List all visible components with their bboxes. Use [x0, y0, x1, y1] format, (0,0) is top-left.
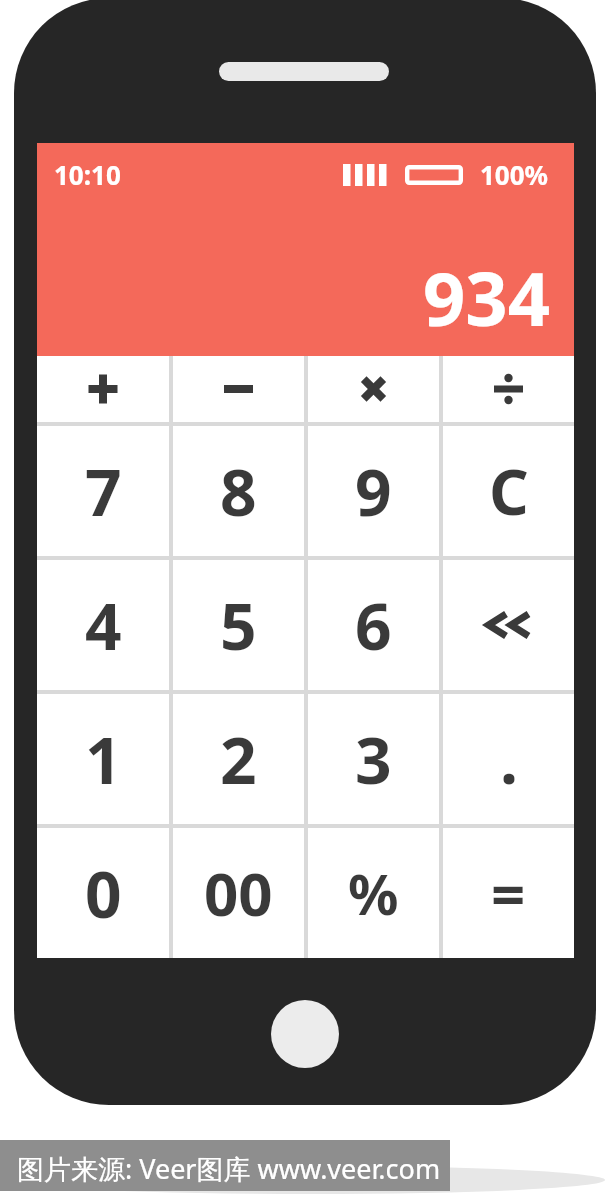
staticText: 7 — [85, 448, 122, 535]
button[interactable]: 8 — [173, 426, 304, 556]
staticText: % — [348, 855, 399, 931]
button[interactable] — [271, 1000, 339, 1068]
button[interactable]: 2 — [173, 694, 304, 824]
button[interactable]: 7 — [37, 426, 169, 556]
staticText: 00 — [204, 852, 273, 934]
button[interactable]: 5 — [173, 560, 304, 690]
button[interactable] — [308, 356, 439, 422]
staticText: 6 — [355, 582, 392, 669]
button[interactable] — [37, 356, 169, 422]
staticText: . — [500, 716, 518, 803]
button[interactable]: 4 — [37, 560, 169, 690]
staticText: 9 — [355, 448, 392, 535]
staticText: 4 — [85, 582, 122, 669]
staticText: 934 — [423, 247, 550, 348]
staticText: 10:10 — [54, 157, 121, 192]
button[interactable]: 6 — [308, 560, 439, 690]
button[interactable]: 00 — [173, 828, 304, 958]
button[interactable] — [173, 356, 304, 422]
staticText: 图片来源: Veer图库 www.veer.com — [17, 1150, 441, 1187]
staticText: 0 — [85, 850, 122, 937]
button[interactable] — [443, 560, 574, 690]
button[interactable]: = — [443, 828, 574, 958]
staticText: 8 — [220, 448, 257, 535]
staticText: 5 — [220, 582, 257, 669]
button[interactable]: C — [443, 426, 574, 556]
staticText: 2 — [220, 716, 257, 803]
button[interactable] — [443, 356, 574, 422]
button[interactable]: 1 — [37, 694, 169, 824]
button[interactable]: . — [443, 694, 574, 824]
staticText: 3 — [355, 716, 392, 803]
button[interactable] — [0, 1140, 450, 1191]
button[interactable]: 3 — [308, 694, 439, 824]
staticText: 1 — [85, 716, 122, 803]
staticText: 100% — [480, 157, 549, 192]
staticText: = — [491, 852, 526, 934]
button[interactable]: % — [308, 828, 439, 958]
button[interactable]: 0 — [37, 828, 169, 958]
staticText: C — [489, 449, 529, 533]
button[interactable]: 9 — [308, 426, 439, 556]
